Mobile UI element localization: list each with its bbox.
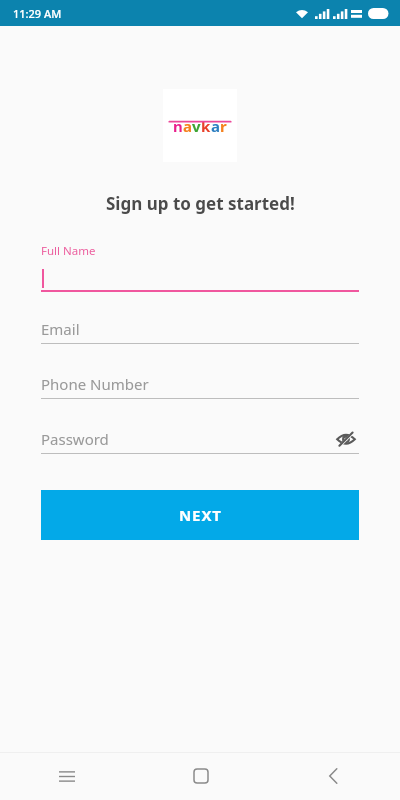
- staticText: v: [192, 116, 201, 136]
- staticText: NEXT: [179, 505, 222, 525]
- button[interactable]: Home: [134, 752, 267, 800]
- staticText: k: [201, 116, 211, 136]
- staticText: Sign up to get started!: [106, 192, 295, 215]
- staticText: Phone Number: [41, 374, 149, 394]
- staticText: Full Name: [41, 243, 96, 259]
- button[interactable]: Toggle password visibility: [333, 426, 359, 452]
- button[interactable]: Phone Number: [41, 370, 359, 399]
- button[interactable]: Email: [41, 315, 359, 344]
- button[interactable]: Back: [267, 752, 400, 800]
- staticText: Email: [41, 319, 80, 339]
- staticText: n: [173, 116, 183, 136]
- staticText: a: [183, 116, 192, 136]
- staticText: r: [220, 116, 227, 136]
- button[interactable]: Full Name: [41, 243, 359, 292]
- button[interactable]: NEXT: [41, 490, 359, 540]
- staticText: Password: [41, 429, 109, 449]
- button[interactable]: Recents: [0, 752, 134, 800]
- staticText: 11:29 AM: [13, 6, 62, 21]
- button[interactable]: Password: [41, 425, 359, 454]
- staticText: a: [211, 116, 220, 136]
